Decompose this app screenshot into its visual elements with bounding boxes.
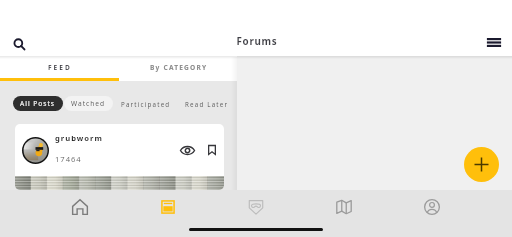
button[interactable]: Watched <box>64 96 113 111</box>
staticText: Watched <box>71 99 106 108</box>
button[interactable]: Bookmark <box>203 141 221 159</box>
button[interactable]: Account <box>388 190 476 224</box>
staticText: 17464 <box>55 154 82 164</box>
staticText: FEED <box>48 63 72 72</box>
button[interactable]: FEED <box>0 56 118 81</box>
staticText: Forums <box>1 35 512 48</box>
button[interactable]: Home <box>36 190 124 224</box>
button[interactable]: Read Later <box>178 96 236 111</box>
button[interactable]: Participated <box>114 96 178 111</box>
staticText: Participated <box>121 100 171 108</box>
button[interactable]: All Posts <box>13 96 63 111</box>
button[interactable]: Guides <box>212 190 300 224</box>
button[interactable]: Create new post <box>464 147 499 182</box>
button[interactable]: Menu <box>482 30 506 54</box>
button[interactable]: Forums <box>124 190 212 224</box>
button[interactable]: Search <box>5 30 33 58</box>
button[interactable]: grubworm <box>15 124 224 190</box>
staticText: Read Later <box>185 100 229 108</box>
staticText: By CATEGORY <box>150 63 208 72</box>
button[interactable]: Map <box>300 190 388 224</box>
button[interactable]: By CATEGORY <box>118 56 237 81</box>
button[interactable]: Views <box>177 140 197 160</box>
staticText: grubworm <box>55 133 103 143</box>
staticText: All Posts <box>20 99 56 108</box>
